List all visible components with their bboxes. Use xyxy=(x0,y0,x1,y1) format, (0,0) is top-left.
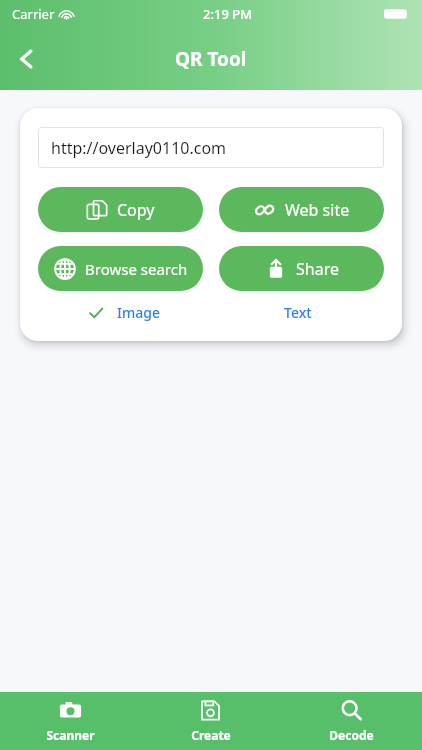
button[interactable]: Decode xyxy=(281,692,422,750)
button[interactable]: Create xyxy=(140,692,281,750)
staticText: Share xyxy=(296,258,339,280)
staticText: Carrier xyxy=(12,5,55,23)
staticText: Copy xyxy=(117,199,155,221)
button[interactable]: Web site xyxy=(219,187,384,232)
button[interactable]: Text xyxy=(211,303,384,322)
button[interactable]: Browse search xyxy=(38,246,203,291)
staticText: Decode xyxy=(329,727,374,743)
staticText: QR Tool xyxy=(175,46,247,72)
button[interactable]: http://overlay0110.com xyxy=(38,127,384,168)
staticText: Web site xyxy=(285,199,350,221)
button[interactable]: Back xyxy=(4,36,50,82)
staticText: Scanner xyxy=(46,727,95,743)
button[interactable]: Share xyxy=(219,246,384,291)
staticText: 2:19 PM xyxy=(203,5,253,23)
button[interactable]: Scanner xyxy=(0,692,140,750)
button[interactable]: Image xyxy=(38,303,211,322)
button[interactable]: Copy xyxy=(38,187,203,232)
staticText: Text xyxy=(284,303,312,322)
staticText: Create xyxy=(191,727,231,743)
staticText: Browse search xyxy=(85,259,188,279)
staticText: Image xyxy=(117,303,160,322)
staticText: http://overlay0110.com xyxy=(51,137,227,159)
